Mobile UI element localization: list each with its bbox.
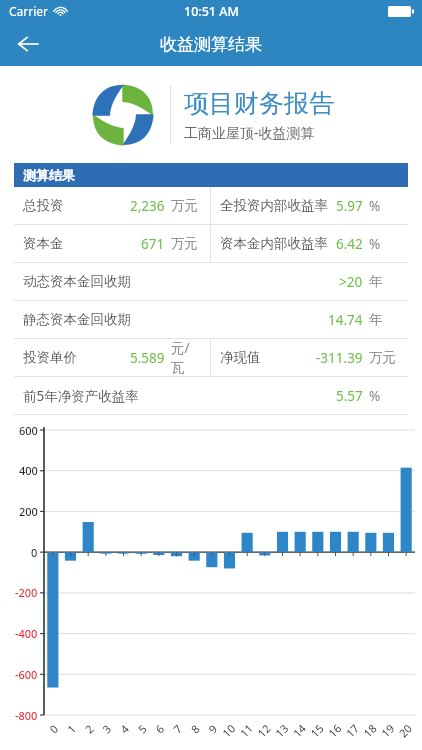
staticText: 10:51 AM — [184, 3, 239, 20]
staticText: 总投资 — [23, 197, 64, 214]
staticText: 万元 — [369, 349, 396, 366]
staticText: % — [369, 235, 381, 253]
staticText: 资本金 — [23, 235, 64, 252]
staticText: 年 — [369, 273, 383, 290]
staticText: 年 — [369, 311, 383, 328]
staticText: 投资单价 — [23, 349, 77, 366]
staticText: % — [369, 387, 381, 405]
button[interactable]: 全投资内部收益率 — [211, 187, 408, 224]
button[interactable]: 前5年净资产收益率 — [14, 377, 408, 414]
staticText: 净现值 — [220, 349, 261, 366]
button[interactable]: 净现值 — [211, 339, 408, 376]
staticText: % — [369, 197, 381, 215]
button[interactable]: 动态资本金回收期 — [14, 263, 408, 300]
button[interactable]: 静态资本金回收期 — [14, 301, 408, 338]
staticText: 元/瓦 — [171, 339, 201, 376]
staticText: 万元 — [171, 235, 198, 252]
staticText: 14.74 — [328, 311, 363, 329]
button[interactable]: 投资单价 — [14, 339, 210, 376]
staticText: 动态资本金回收期 — [23, 273, 131, 290]
staticText: 工商业屋顶-收益测算 — [184, 123, 315, 142]
staticText: 5.57 — [336, 387, 363, 405]
staticText: 5.97 — [336, 197, 363, 215]
button[interactable]: 资本金内部收益率 — [211, 225, 408, 262]
staticText: 静态资本金回收期 — [23, 311, 131, 328]
staticText: 5.589 — [130, 349, 165, 367]
staticText: 测算结果 — [23, 167, 75, 183]
staticText: 万元 — [171, 197, 198, 214]
staticText: 收益测算结果 — [160, 34, 262, 55]
staticText: 前5年净资产收益率 — [23, 387, 139, 405]
staticText: 2,236 — [130, 197, 165, 215]
staticText: Carrier — [9, 3, 49, 19]
staticText: 项目财务报告 — [184, 88, 334, 119]
staticText: 全投资内部收益率 — [220, 197, 328, 214]
button[interactable]: 资本金 — [14, 225, 210, 262]
staticText: -311.39 — [316, 349, 363, 367]
staticText: 资本金内部收益率 — [220, 235, 328, 252]
staticText: 671 — [141, 235, 165, 253]
button[interactable]: 总投资 — [14, 187, 210, 224]
staticText: 6.42 — [336, 235, 363, 253]
staticText: >20 — [339, 273, 363, 291]
button[interactable]: Back — [8, 24, 48, 64]
